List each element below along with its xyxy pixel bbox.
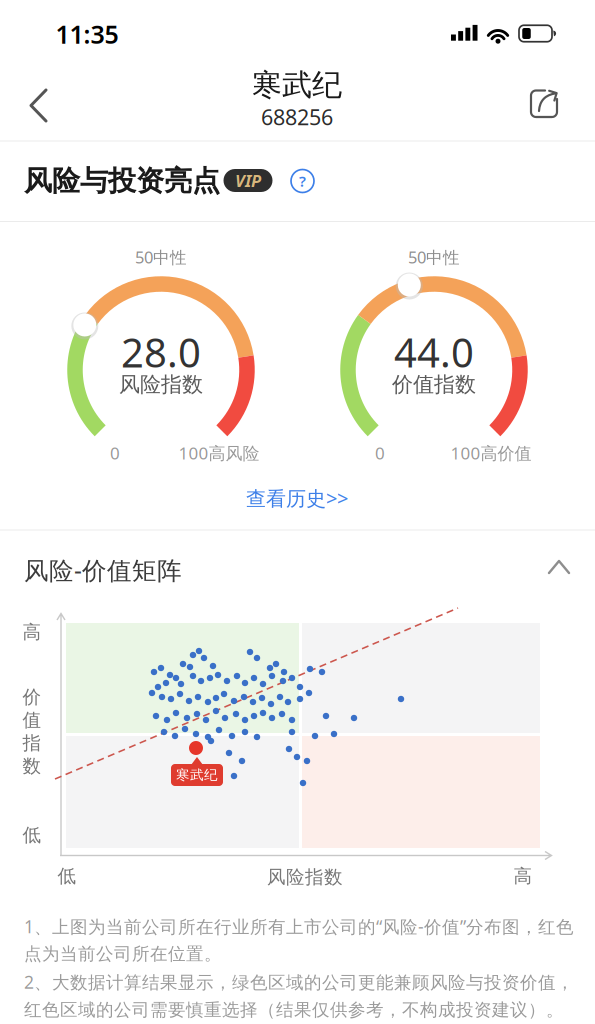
staticText: 指 (22, 731, 41, 755)
staticText: 50中性 (408, 246, 460, 268)
button[interactable]: VIP (223, 169, 272, 192)
staticText: 风险指数 (119, 371, 203, 398)
staticText: 值 (22, 708, 41, 732)
staticText: 1、上图为当前公司所在行业所有上市公司的“风险-价值”分布图，红色 (24, 915, 574, 938)
staticText: 数 (22, 754, 41, 778)
staticText: 查看历史>> (246, 484, 348, 512)
staticText: ? (299, 171, 306, 191)
staticText: 0 (110, 441, 120, 465)
staticText: 28.0 (121, 325, 201, 379)
staticText: 50中性 (135, 246, 187, 268)
staticText: 688256 (261, 102, 333, 132)
staticText: 低 (57, 864, 76, 888)
button[interactable]: Back (16, 83, 60, 127)
button[interactable]: 收起 (537, 550, 581, 586)
staticText: 点为当前公司所在位置。 (24, 943, 222, 965)
staticText: 低 (22, 823, 41, 847)
staticText: 寒武纪 (176, 766, 218, 783)
staticText: 11:35 (55, 17, 118, 51)
staticText: 寒武纪 (252, 66, 342, 104)
button[interactable]: Share (522, 81, 566, 125)
staticText: 100高风险 (178, 441, 259, 465)
staticText: 44.0 (394, 325, 474, 379)
button[interactable]: 查看历史>> (246, 484, 348, 512)
staticText: 红色区域的公司需要慎重选择（结果仅供参考，不构成投资建议）。 (24, 999, 564, 1021)
staticText: 风险-价值矩阵 (24, 553, 182, 587)
staticText: 高 (22, 620, 41, 644)
staticText: 2、大数据计算结果显示，绿色区域的公司更能兼顾风险与投资价值， (24, 970, 574, 994)
staticText: 价 (22, 685, 41, 709)
staticText: 高 (513, 864, 532, 888)
staticText: VIP (235, 169, 261, 192)
staticText: 风险指数 (267, 865, 343, 889)
staticText: 价值指数 (392, 371, 476, 398)
button[interactable]: 帮助 (287, 166, 317, 196)
staticText: 风险与投资亮点 (24, 163, 220, 199)
staticText: 0 (375, 441, 385, 465)
staticText: 100高价值 (450, 441, 531, 465)
